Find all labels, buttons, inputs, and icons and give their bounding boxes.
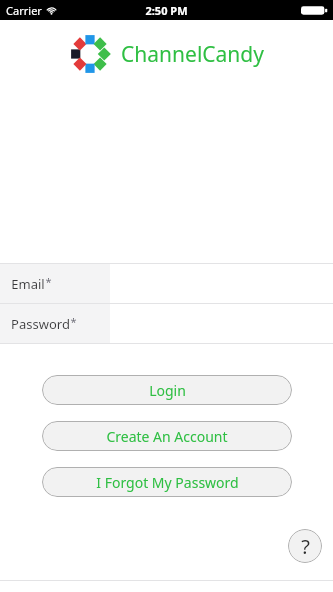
staticText: I Forgot My Password xyxy=(96,473,239,492)
staticText: ChannelCandy xyxy=(121,40,264,69)
button[interactable]: Help xyxy=(288,529,322,563)
staticText: Create An Account xyxy=(106,427,228,446)
staticText: Login xyxy=(149,381,186,400)
staticText: Carrier xyxy=(6,3,42,18)
staticText: ? xyxy=(301,533,310,560)
button[interactable]: Password xyxy=(0,304,333,343)
button[interactable]: Create An Account xyxy=(42,421,292,451)
staticText: 2:50 PM xyxy=(145,3,188,18)
staticText: Password xyxy=(11,315,70,333)
button[interactable]: Login xyxy=(42,375,292,405)
button[interactable]: Email xyxy=(0,264,333,303)
staticText: * xyxy=(70,314,77,329)
staticText: * xyxy=(45,274,52,289)
button[interactable]: I Forgot My Password xyxy=(42,467,292,497)
staticText: Email xyxy=(11,275,45,293)
